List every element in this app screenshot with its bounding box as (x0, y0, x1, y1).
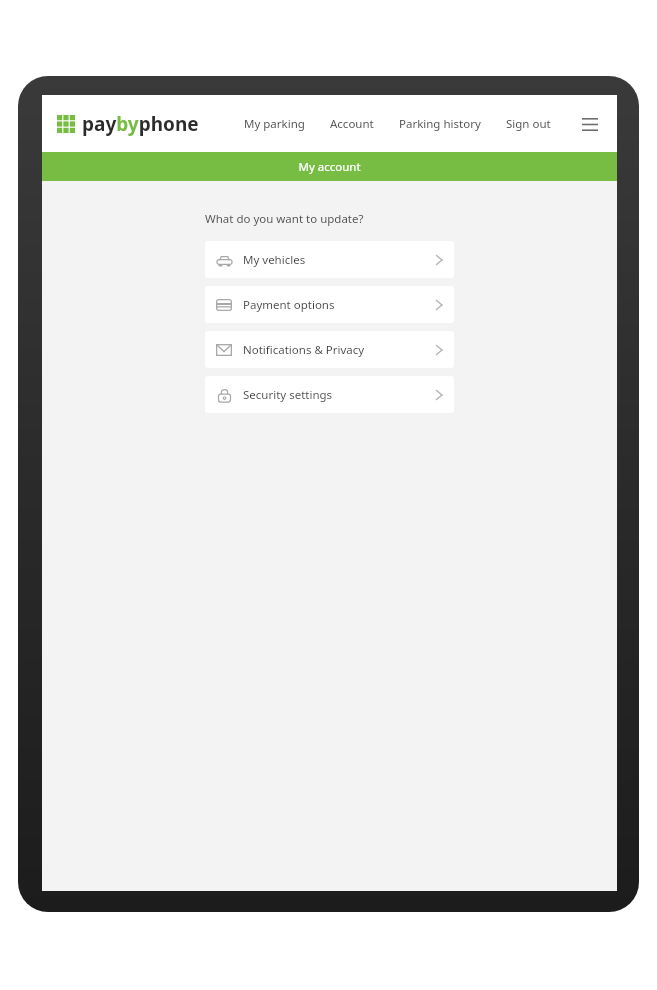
staticText: My vehicles (243, 252, 306, 268)
button[interactable]: My parking (242, 110, 307, 138)
button[interactable]: Sign out (504, 110, 553, 138)
staticText: Sign out (506, 116, 551, 132)
button[interactable]: Menu (577, 111, 603, 137)
staticText: Security settings (243, 387, 333, 403)
button[interactable]: Account (328, 110, 376, 138)
staticText: paybyphone (82, 111, 199, 137)
staticText: Parking history (399, 116, 481, 132)
button[interactable]: Security settings (205, 376, 454, 413)
button[interactable]: My vehicles (205, 241, 454, 278)
staticText: Notifications & Privacy (243, 342, 365, 358)
staticText: Account (330, 116, 374, 132)
button[interactable]: Payment options (205, 286, 454, 323)
button[interactable]: Parking history (397, 110, 483, 138)
staticText: My parking (244, 116, 305, 132)
staticText: What do you want to update? (205, 211, 364, 227)
button[interactable]: Notifications & Privacy (205, 331, 454, 368)
staticText: Payment options (243, 297, 335, 313)
staticText: My account (298, 159, 361, 175)
